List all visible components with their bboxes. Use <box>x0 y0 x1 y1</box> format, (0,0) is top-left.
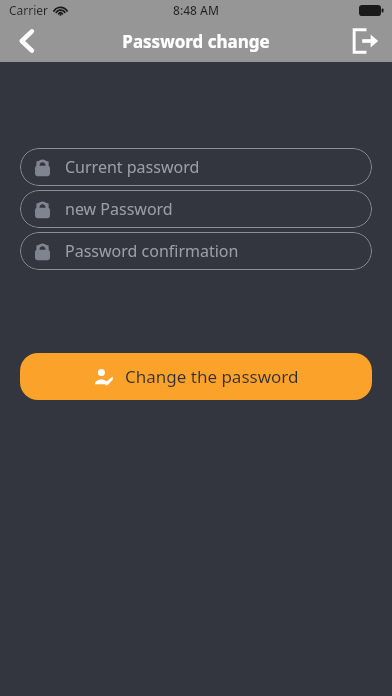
staticText: Change the password <box>125 365 299 388</box>
staticText: new Password <box>65 198 173 220</box>
button[interactable]: new Password <box>20 190 372 228</box>
staticText: Current password <box>65 156 200 178</box>
button[interactable]: Change the password <box>20 353 372 400</box>
staticText: Password change <box>122 30 270 53</box>
staticText: Carrier <box>9 2 49 18</box>
staticText: 8:48 AM <box>173 2 219 18</box>
button[interactable]: Password confirmation <box>20 232 372 270</box>
button[interactable]: Current password <box>20 148 372 186</box>
staticText: Password confirmation <box>65 240 239 262</box>
button[interactable]: Back <box>0 20 52 62</box>
button[interactable]: Log out <box>338 20 392 62</box>
